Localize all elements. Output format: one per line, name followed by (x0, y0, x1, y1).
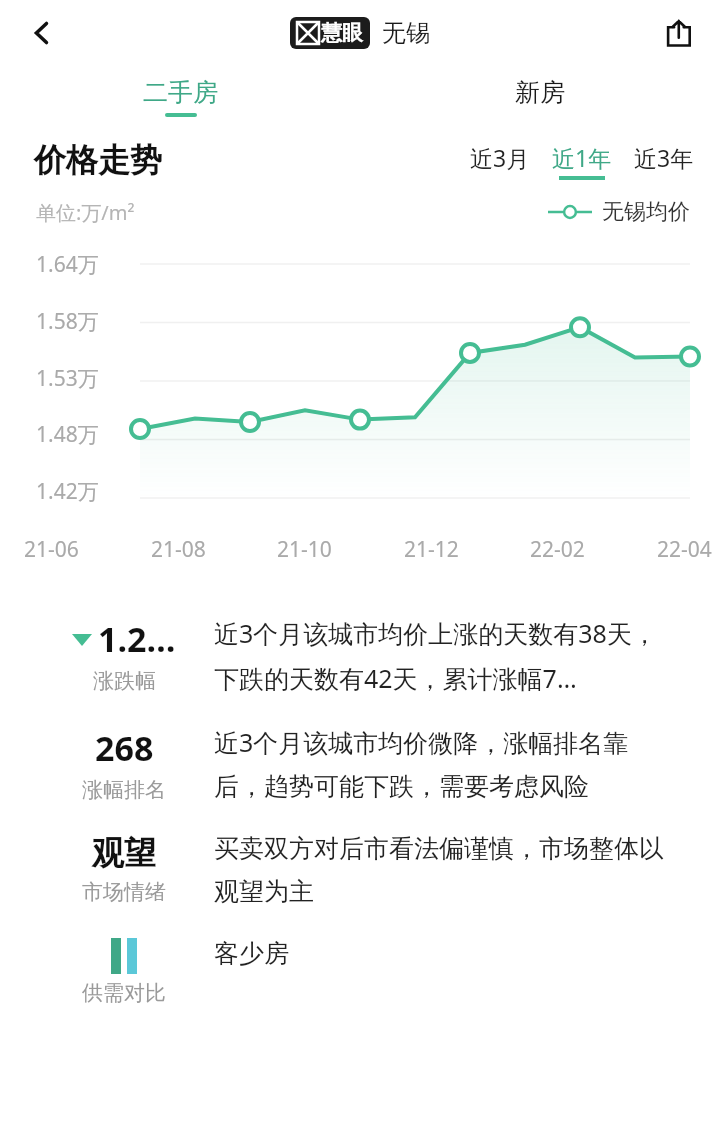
staticText: 无锡均价 (602, 198, 690, 226)
staticText: 慧眼 (321, 20, 363, 46)
staticText: 涨幅排名 (82, 777, 166, 803)
button[interactable]: 二手房 (0, 66, 360, 128)
button[interactable]: 近3年 (634, 142, 694, 180)
button[interactable]: 近1年 (552, 142, 612, 180)
staticText: 新房 (515, 77, 565, 108)
staticText: 无锡 (382, 18, 430, 48)
staticText: 市场情绪 (82, 879, 166, 905)
staticText: 1.2… (98, 616, 176, 662)
staticText: 买卖双方对后市看法偏谨慎，市场整体以观望为主 (214, 833, 676, 908)
staticText: 1.42万 (36, 477, 99, 506)
staticText: 近1年 (552, 142, 612, 173)
staticText: 供需对比 (82, 980, 166, 1006)
staticText: 268 (95, 725, 154, 771)
staticText: 近3年 (634, 142, 694, 173)
staticText: 单位:万/m² (36, 199, 135, 226)
staticText: 21-10 (277, 535, 332, 564)
button[interactable]: 新房 (360, 66, 720, 128)
staticText: 近3个月该城市均价上涨的天数有38天，下跌的天数有42天，累计涨幅7… (214, 616, 676, 695)
staticText: 客少房 (214, 938, 289, 969)
staticText: 21-12 (404, 535, 459, 564)
staticText: 二手房 (143, 77, 218, 108)
staticText: 1.48万 (36, 420, 99, 449)
button[interactable]: 近3月 (470, 142, 530, 180)
staticText: 1.58万 (36, 307, 99, 336)
staticText: 1.53万 (36, 364, 99, 393)
staticText: 近3月 (470, 142, 530, 173)
staticText: 22-04 (657, 535, 712, 564)
staticText: 观望 (92, 833, 156, 873)
staticText: 21-06 (24, 535, 79, 564)
staticText: 1.64万 (36, 250, 99, 279)
staticText: 22-02 (530, 535, 585, 564)
staticText: 价格走势 (34, 140, 162, 180)
staticText: 近3个月该城市均价微降，涨幅排名靠后，趋势可能下跌，需要考虑风险 (214, 725, 676, 803)
button[interactable]: Share (654, 9, 702, 57)
staticText: 涨跌幅 (93, 668, 156, 694)
button[interactable]: Back (18, 9, 66, 57)
staticText: 21-08 (151, 535, 206, 564)
